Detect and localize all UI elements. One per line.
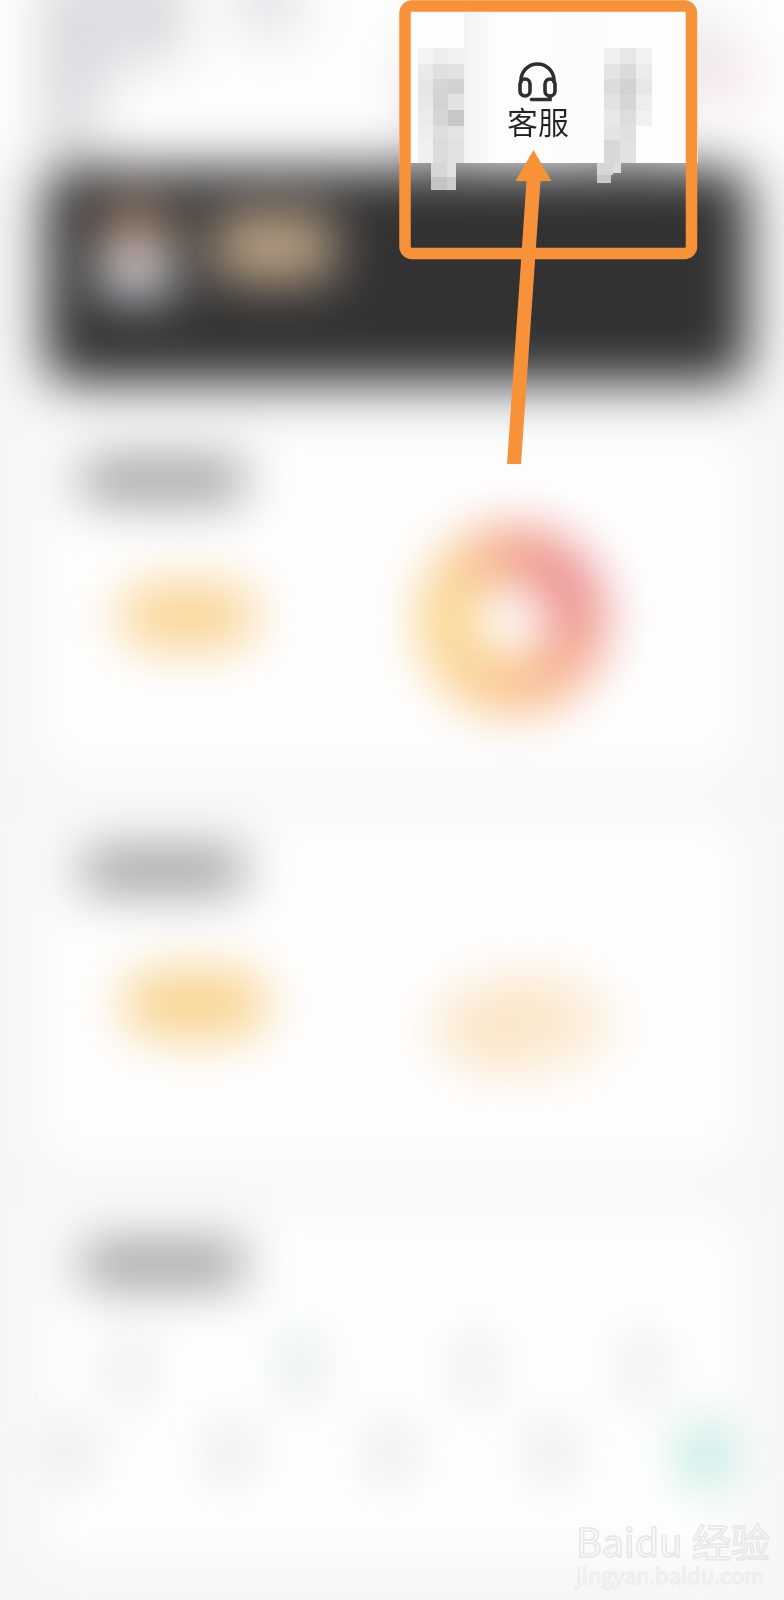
- button[interactable]: 客服 customer service: [0, 0, 784, 1600]
